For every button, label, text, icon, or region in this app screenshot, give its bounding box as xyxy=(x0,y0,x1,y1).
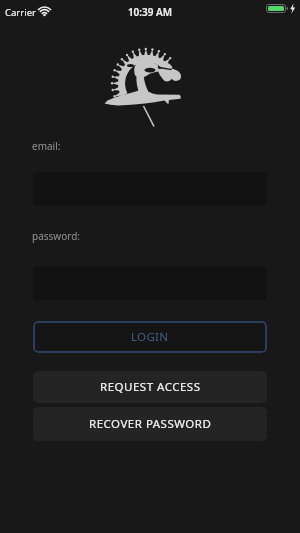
staticText: REQUEST ACCESS xyxy=(100,379,201,395)
staticText: RECOVER PASSWORD xyxy=(89,416,212,432)
staticText: email: xyxy=(32,139,61,153)
staticText: Carrier xyxy=(5,6,36,19)
button[interactable]: LOGIN xyxy=(33,321,267,353)
staticText: 10:39 AM xyxy=(0,5,300,19)
staticText: LOGIN xyxy=(131,329,169,345)
button[interactable]: REQUEST ACCESS xyxy=(33,371,267,403)
staticText: password: xyxy=(32,229,81,243)
button[interactable]: RECOVER PASSWORD xyxy=(33,407,267,441)
